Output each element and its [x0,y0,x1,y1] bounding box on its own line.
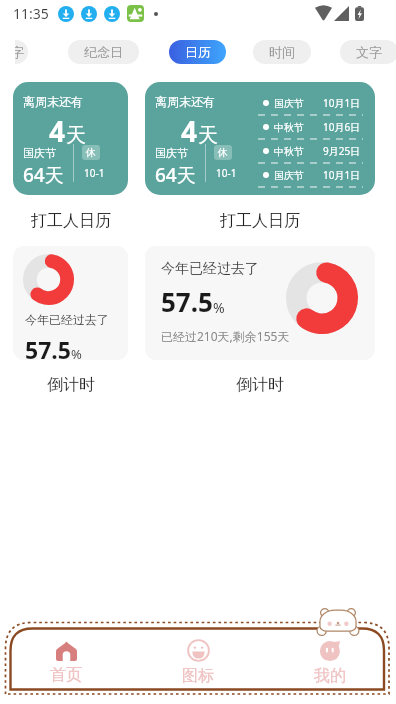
staticText: 倒计时 [47,375,95,395]
button[interactable]: Home [0,636,132,689]
staticText: 文字 [356,44,382,60]
staticText: 休 [86,146,96,159]
button[interactable]: 离周末还有 [13,82,128,195]
staticText: 天 [66,123,86,148]
staticText: 9月25日 [323,144,361,158]
staticText: 10月1日 [323,168,361,182]
staticText: 今年已经过去了 [161,260,259,278]
staticText: 纪念日 [84,44,123,60]
staticText: 国庆节 [23,146,56,160]
staticText: 4 [181,112,198,150]
staticText: 打工人日历 [31,211,111,231]
staticText: 天 [198,123,218,148]
staticText: 文字 [15,44,24,60]
button[interactable]: 今年已经过去了 [145,246,375,360]
staticText: 倒计时 [236,375,284,395]
button[interactable]: 日历 [169,40,226,64]
staticText: 57.5 [25,334,71,360]
staticText: 今年已经过去了 [25,312,109,327]
staticText: 57.5 [161,284,213,319]
button[interactable] [15,40,28,64]
button[interactable]: 今年已经过去了 [13,246,128,360]
staticText: 离周末还有 [23,94,83,109]
staticText: 时间 [269,44,295,60]
other: Profile [319,639,342,662]
staticText: 图标 [182,666,214,686]
staticText: 中秋节 [274,121,304,134]
staticText: 我的 [314,666,346,686]
staticText: 打工人日历 [220,211,300,231]
staticText: 10月1日 [323,96,361,110]
button[interactable]: Profile [264,636,396,689]
staticText: 离周末还有 [155,94,215,109]
staticText: 4 [49,112,66,150]
button[interactable]: 文字 [340,40,396,64]
staticText: 10-1 [216,166,237,180]
staticText: 休 [218,146,228,159]
staticText: 64天 [23,162,64,188]
staticText: 国庆节 [274,97,304,110]
other: Icons [187,639,210,662]
button[interactable]: Icons [132,636,264,689]
staticText: % [71,345,82,360]
staticText: 国庆节 [274,169,304,182]
other: Home [56,640,77,661]
staticText: % [213,298,225,317]
staticText: 首页 [50,665,82,685]
staticText: 11:35 [13,4,49,23]
button[interactable]: 离周末还有 [145,82,375,195]
staticText: 国庆节 [155,146,188,160]
staticText: 已经过210天,剩余155天 [161,328,290,344]
staticText: 10月6日 [323,120,361,134]
button[interactable]: 时间 [253,40,311,64]
staticText: 10-1 [84,166,105,180]
staticText: 日历 [185,44,211,60]
staticText: 中秋节 [274,145,304,158]
staticText: 64天 [155,162,196,188]
button[interactable]: 纪念日 [68,40,139,64]
